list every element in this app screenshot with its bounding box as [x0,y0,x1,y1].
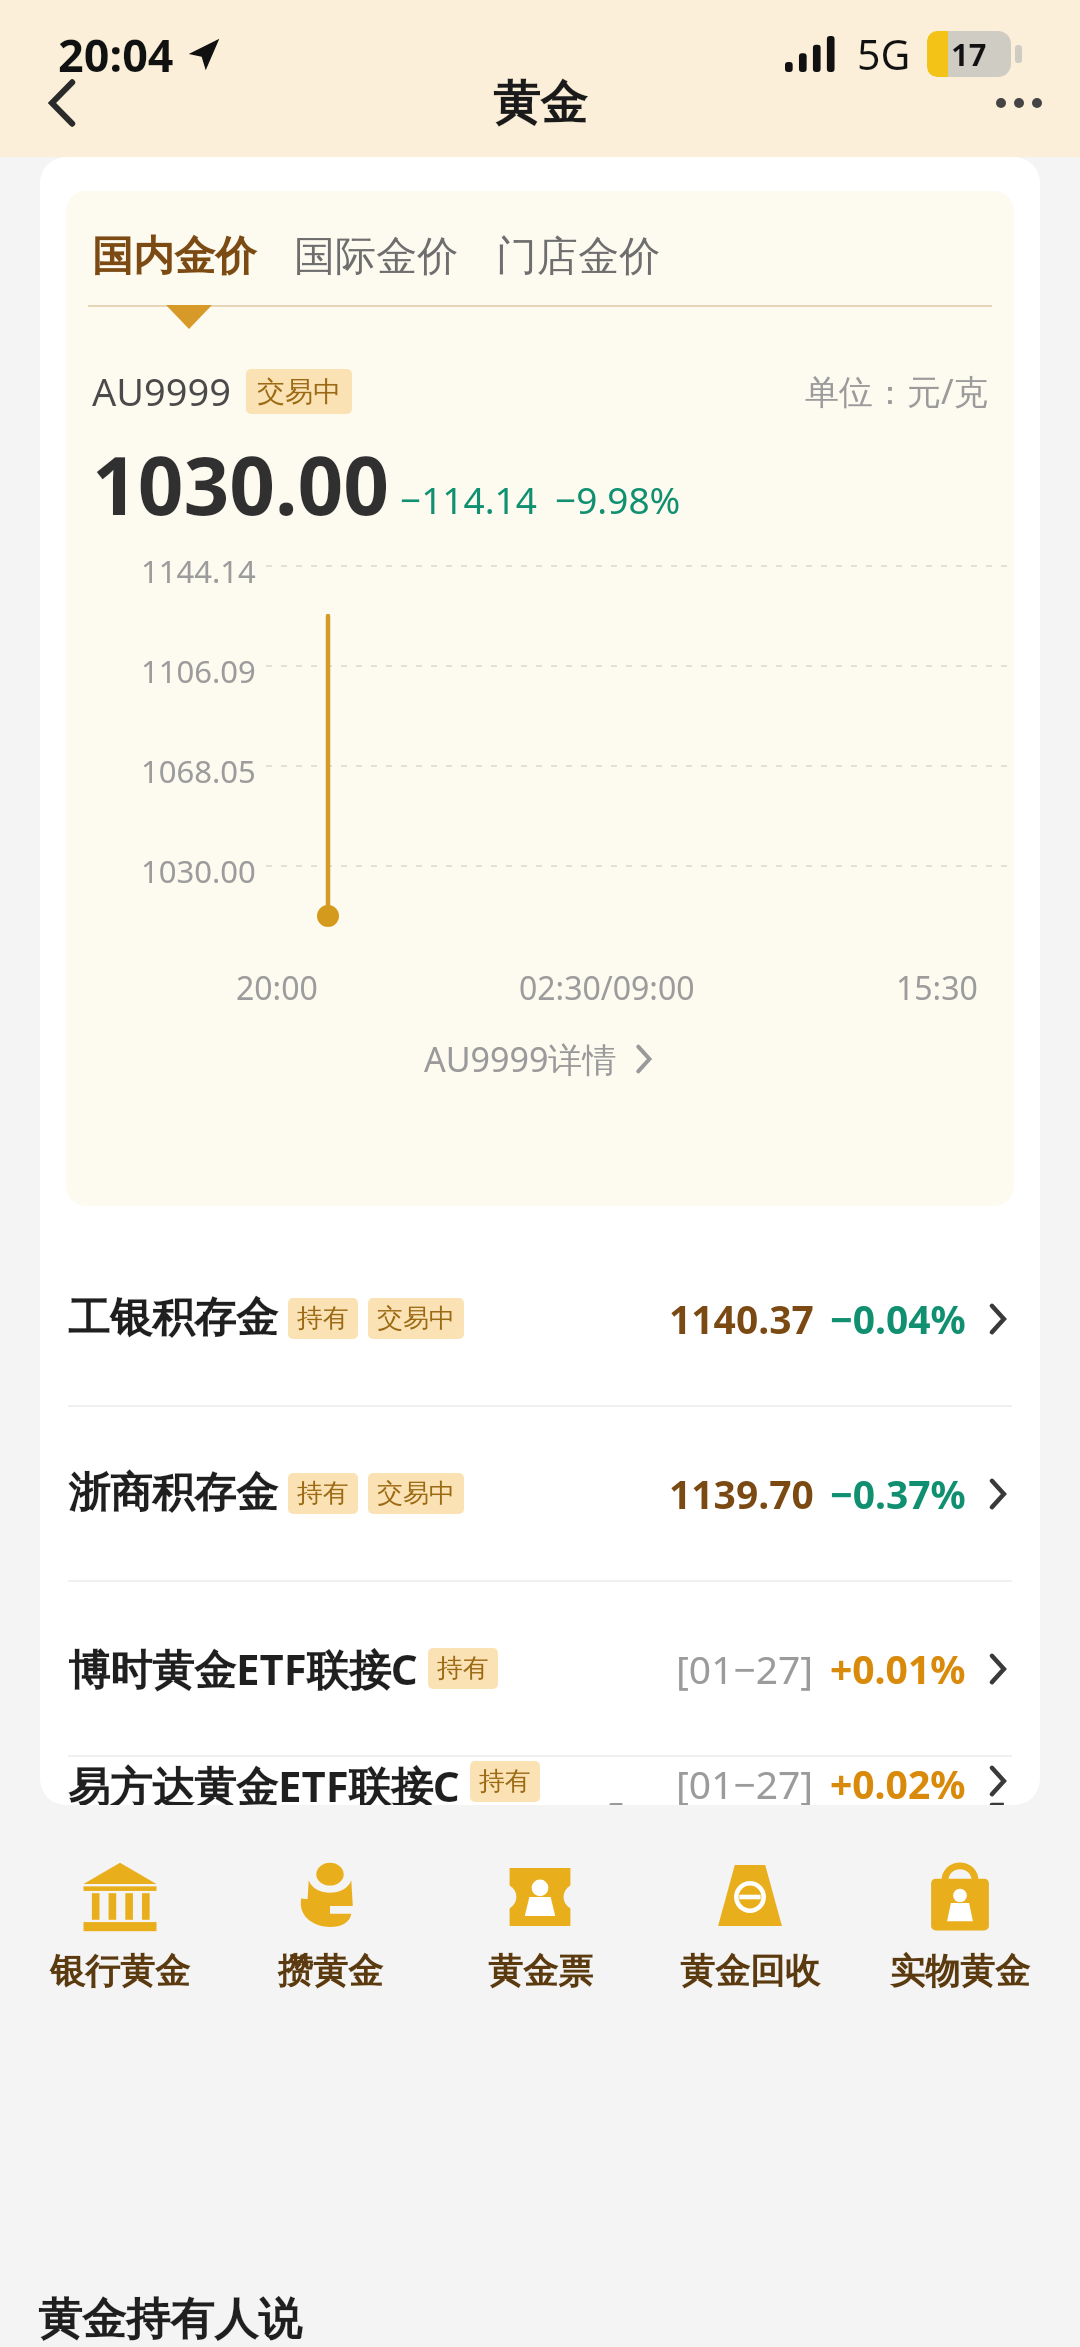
button[interactable]: 浙商积存金 [40,1407,1040,1580]
staticText: 黄金回收 [680,1949,820,1993]
staticText: 国内金价 [92,231,256,283]
button[interactable]: More options [980,64,1058,142]
staticText: 持有 [297,1477,349,1510]
staticText: 交易中 [377,1477,455,1510]
staticText: [01−27] [676,1642,814,1695]
staticText: 国际金价 [294,231,458,283]
button[interactable]: 黄金回收 [660,1859,840,1993]
staticText: 1030.00 [92,429,390,538]
staticText: 1139.70 [669,1467,814,1520]
staticText: 单位：元/克 [805,368,988,414]
staticText: 交易中 [257,374,341,409]
staticText: 交易中 [377,1302,455,1335]
staticText: 博时黄金ETF联接C [68,1640,418,1697]
staticText: 02:30/09:00 [519,966,695,1010]
button[interactable]: 易方达黄金ETF联接C [40,1757,1040,1805]
button[interactable]: 博时黄金ETF联接C [40,1582,1040,1755]
staticText: 黄金 [493,74,587,133]
staticText: 1030.00 [141,850,256,892]
staticText: 银行黄金 [50,1949,190,1993]
button[interactable]: 工银积存金 [40,1232,1040,1405]
staticText: 20:04 [58,24,174,85]
staticText: 门店金价 [496,231,660,283]
button[interactable]: 黄金票 [450,1859,630,1993]
button[interactable]: 门店金价 [496,231,660,283]
staticText: 15:30 [896,966,978,1010]
staticText: AU9999 [92,365,232,417]
staticText: 工银积存金 [68,1292,278,1345]
staticText: 易方达黄金ETF联接C [68,1757,460,1805]
staticText: −0.37% [830,1467,966,1520]
staticText: 20:00 [236,966,318,1010]
staticText: 持有 [479,1765,531,1798]
button[interactable]: AU9999详情 [66,1036,1014,1082]
button[interactable]: 国内金价 [92,231,256,283]
staticText: 1140.37 [669,1292,814,1345]
staticText: 实物黄金 [890,1949,1030,1993]
staticText: 持有 [437,1652,489,1685]
staticText: +0.02% [830,1757,966,1805]
staticText: [01−27] [676,1757,814,1805]
button[interactable]: Back [24,64,102,142]
button[interactable]: 实物黄金 [870,1859,1050,1993]
staticText: +0.01% [830,1642,966,1695]
button[interactable]: 银行黄金 [30,1859,210,1993]
staticText: 浙商积存金 [68,1467,278,1520]
staticText: −0.04% [830,1292,966,1345]
staticText: 5G [857,26,911,82]
staticText: AU9999详情 [424,1036,617,1082]
staticText: 17 [951,33,987,75]
staticText: 黄金持有人说 [38,2292,302,2347]
staticText: 持有 [297,1302,349,1335]
staticText: 1068.05 [141,750,256,792]
staticText: 黄金票 [488,1949,593,1993]
staticText: −114.14 [400,474,537,524]
staticText: 攒黄金 [278,1949,383,1993]
button[interactable]: 攒黄金 [240,1859,420,1993]
staticText: 1106.09 [141,650,256,692]
staticText: −9.98% [555,474,681,524]
staticText: 1144.14 [141,550,256,592]
button[interactable]: 国际金价 [294,231,458,283]
